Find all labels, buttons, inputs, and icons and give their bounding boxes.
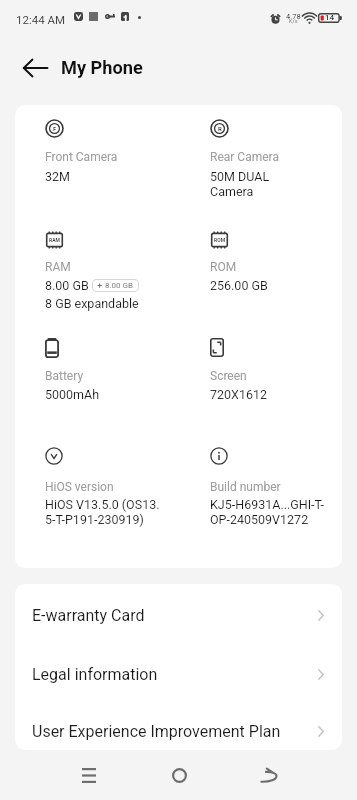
- staticText: F: [53, 125, 57, 132]
- staticText: Battery: [45, 369, 84, 383]
- staticText: HiOS V13.5.0 (OS13. 5-T-P191-230919): [45, 497, 160, 527]
- staticText: Front Camera: [45, 150, 118, 164]
- staticText: 8.00 GB: [105, 281, 134, 290]
- staticText: ROM: [214, 237, 226, 243]
- staticText: 5000mAh: [45, 387, 100, 402]
- button[interactable]: E-warranty Card: [15, 586, 342, 644]
- staticText: RAM: [45, 260, 71, 274]
- staticText: 14: [325, 13, 335, 22]
- button[interactable]: Back: [18, 51, 52, 85]
- staticText: RAM: [49, 237, 60, 243]
- staticText: 50M DUAL Camera: [210, 169, 270, 199]
- staticText: 12:44 AM: [16, 13, 66, 26]
- staticText: 8.00 GB: [45, 278, 89, 293]
- staticText: KJ5-H6931A...GHI-T- OP-240509V1272: [210, 497, 325, 527]
- button[interactable]: Back: [246, 753, 290, 797]
- staticText: 8 GB expandable: [45, 296, 139, 311]
- staticText: R: [218, 125, 222, 132]
- staticText: 256.00 GB: [210, 278, 268, 293]
- staticText: My Phone: [61, 57, 143, 78]
- staticText: Rear Camera: [210, 150, 279, 164]
- staticText: ROM: [210, 260, 237, 274]
- staticText: Screen: [210, 369, 247, 383]
- staticText: HiOS version: [45, 480, 114, 494]
- staticText: +: [97, 280, 103, 291]
- button[interactable]: Recent apps: [67, 753, 111, 797]
- staticText: User Experience Improvement Plan: [32, 722, 318, 741]
- staticText: 720X1612: [210, 387, 268, 402]
- button[interactable]: User Experience Improvement Plan: [15, 702, 342, 750]
- staticText: Build number: [210, 480, 281, 494]
- staticText: E-warranty Card: [32, 606, 318, 625]
- staticText: Legal information: [32, 665, 318, 684]
- staticText: K/s: [289, 18, 298, 24]
- button[interactable]: Legal information: [15, 645, 342, 703]
- staticText: 32M: [45, 169, 70, 184]
- button[interactable]: Home: [157, 753, 201, 797]
- staticText: 4.78: [286, 12, 301, 21]
